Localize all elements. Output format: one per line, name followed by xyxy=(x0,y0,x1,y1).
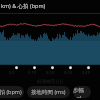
staticText: 0:30 xyxy=(64,70,72,75)
staticText: 0:0 xyxy=(9,70,15,75)
staticText: 心拍 (bpm) xyxy=(0,88,22,96)
staticText: 0:10 xyxy=(28,70,36,75)
staticText: 経過時間 (分) xyxy=(37,78,64,84)
staticText: km) & 心拍 (bpm) xyxy=(1,2,46,10)
staticText: 0:20 xyxy=(46,70,54,75)
button[interactable]: 接地時間 (ms) xyxy=(27,86,70,98)
staticText: 歩幅 (m) xyxy=(73,86,91,98)
button[interactable]: 心拍 (bpm) xyxy=(0,86,24,98)
staticText: 0:40 xyxy=(82,70,90,75)
staticText: 接地時間 (ms) xyxy=(31,88,66,96)
button[interactable]: 歩幅 (m) xyxy=(73,86,91,98)
